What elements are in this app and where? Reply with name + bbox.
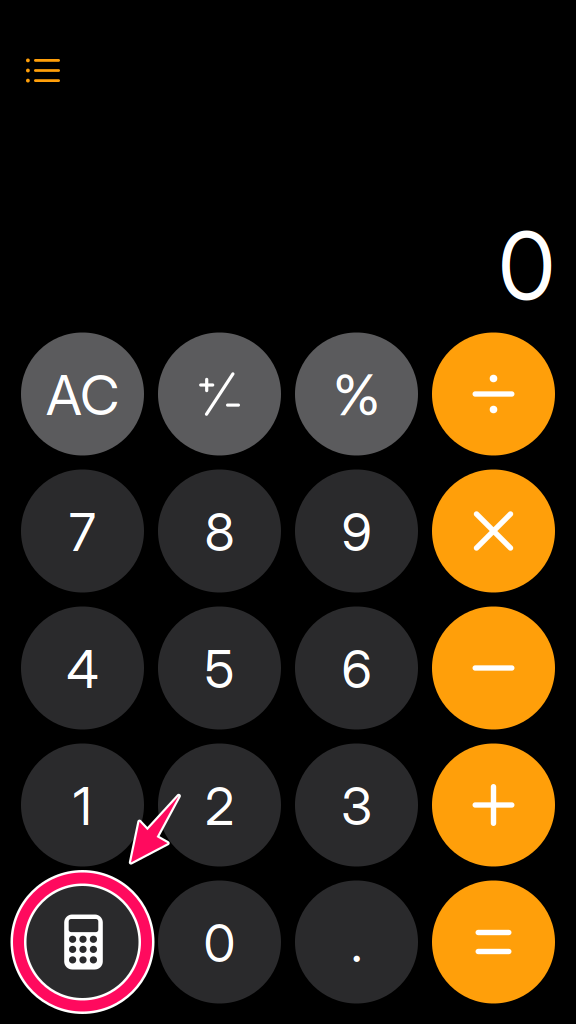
staticText: 2 [205, 774, 234, 837]
button[interactable]: 1 [21, 743, 144, 866]
button[interactable]: 2 [158, 743, 281, 866]
button[interactable]: Divide [432, 332, 555, 455]
staticText: 1 [73, 774, 92, 837]
button[interactable]: Calculator [21, 880, 144, 1003]
button[interactable]: . [295, 880, 418, 1003]
staticText: 6 [341, 637, 371, 700]
staticText: 3 [341, 774, 372, 837]
button[interactable]: Equals [432, 880, 555, 1003]
button[interactable]: Subtract [432, 606, 555, 729]
button[interactable]: Multiply [432, 469, 555, 592]
button[interactable]: 4 [21, 606, 144, 729]
button[interactable]: 8 [158, 469, 281, 592]
button[interactable]: 7 [21, 469, 144, 592]
button[interactable]: % [295, 332, 418, 455]
button[interactable]: 0 [158, 880, 281, 1003]
staticText: 9 [341, 500, 371, 563]
button[interactable]: 9 [295, 469, 418, 592]
staticText: AC [46, 362, 119, 428]
staticText: 0 [498, 209, 555, 322]
staticText: 0 [203, 911, 235, 974]
button[interactable]: History [12, 44, 74, 96]
staticText: % [333, 361, 380, 429]
staticText: 5 [204, 637, 234, 700]
staticText: 8 [204, 500, 234, 563]
staticText: 7 [69, 500, 96, 563]
staticText: 4 [66, 637, 98, 700]
button[interactable]: AC [21, 332, 144, 455]
staticText: . [351, 911, 362, 974]
button[interactable]: 3 [295, 743, 418, 866]
button[interactable]: Add [432, 743, 555, 866]
button[interactable]: 5 [158, 606, 281, 729]
button[interactable]: Plus minus [158, 332, 281, 455]
button[interactable]: 6 [295, 606, 418, 729]
